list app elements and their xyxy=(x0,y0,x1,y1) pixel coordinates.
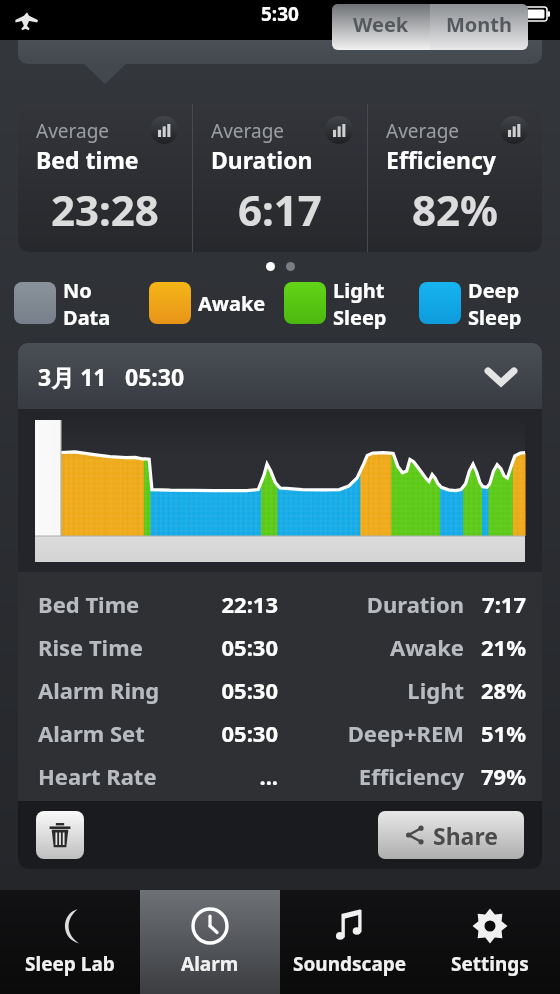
staticText: Data xyxy=(63,304,111,329)
button[interactable]: Soundscape xyxy=(280,890,420,994)
staticText: 7:17 xyxy=(476,589,526,619)
staticText: Efficiency xyxy=(386,144,496,175)
staticText: Heart Rate xyxy=(38,761,178,791)
staticText: 05:30 xyxy=(178,718,278,748)
button[interactable]: Delete xyxy=(36,811,84,859)
button[interactable]: Show chart xyxy=(325,116,353,144)
staticText: 28% xyxy=(476,675,526,705)
button[interactable]: Alarm Set xyxy=(18,711,542,754)
staticText: 6:17 xyxy=(238,181,322,238)
button[interactable]: Show chart xyxy=(150,116,178,144)
staticText: Bed time xyxy=(36,144,139,175)
button[interactable]: Show chart xyxy=(500,116,528,144)
button[interactable]: Settings xyxy=(420,890,560,994)
staticText: Average xyxy=(386,118,460,144)
button[interactable]: Share xyxy=(378,811,524,859)
button[interactable]: Alarm Ring xyxy=(18,668,542,711)
staticText: 05:30 xyxy=(178,675,278,705)
staticText: Rise Time xyxy=(38,632,178,662)
staticText: Deep xyxy=(468,277,520,304)
staticText: 3月 11 xyxy=(38,361,107,392)
staticText: ... xyxy=(178,761,278,791)
staticText: Bed Time xyxy=(38,589,178,619)
staticText: Alarm Set xyxy=(38,718,178,748)
staticText: Alarm xyxy=(181,951,239,977)
staticText: Awake xyxy=(198,290,266,317)
staticText: 23:28 xyxy=(51,181,159,238)
button[interactable]: 3月 11 xyxy=(18,343,542,409)
staticText: 22:13 xyxy=(178,589,278,619)
staticText: 3月 4 - 10 xyxy=(38,8,148,42)
staticText: Share xyxy=(433,820,498,851)
button[interactable]: Average xyxy=(193,104,367,252)
staticText: 05:30 xyxy=(125,361,185,392)
staticText: No xyxy=(63,277,92,304)
button[interactable]: Month xyxy=(430,4,528,50)
staticText: Month xyxy=(446,11,513,38)
button[interactable]: Heart Rate xyxy=(18,754,542,797)
button[interactable]: Week xyxy=(332,4,430,50)
staticText: Sleep xyxy=(468,304,522,329)
staticText: Efficiency xyxy=(278,761,464,791)
staticText: 82% xyxy=(412,181,498,238)
staticText: 05:30 xyxy=(178,632,278,662)
staticText: Duration xyxy=(278,589,464,619)
staticText: Average xyxy=(36,118,110,144)
staticText: Soundscape xyxy=(293,951,407,977)
button[interactable]: Rise Time xyxy=(18,625,542,668)
button[interactable]: Average xyxy=(18,104,192,252)
staticText: Sleep Lab xyxy=(25,951,115,977)
staticText: Light xyxy=(333,277,385,304)
staticText: 51% xyxy=(476,718,526,748)
staticText: Week xyxy=(353,11,409,38)
staticText: Light xyxy=(278,675,464,705)
staticText: 21% xyxy=(476,632,526,662)
button[interactable]: Sleep Lab xyxy=(0,890,140,994)
staticText: Alarm Ring xyxy=(38,675,178,705)
staticText: 5:30 xyxy=(261,1,299,27)
staticText: 100% xyxy=(465,1,515,27)
staticText: Duration xyxy=(211,144,313,175)
staticText: Settings xyxy=(451,951,529,977)
staticText: Sleep xyxy=(333,304,387,329)
staticText: Average xyxy=(211,118,285,144)
button[interactable]: Bed Time xyxy=(18,582,542,625)
button[interactable]: Alarm xyxy=(140,890,280,994)
staticText: Awake xyxy=(278,632,464,662)
staticText: 79% xyxy=(476,761,526,791)
staticText: Deep+REM xyxy=(278,718,464,748)
button[interactable]: Average xyxy=(368,104,542,252)
